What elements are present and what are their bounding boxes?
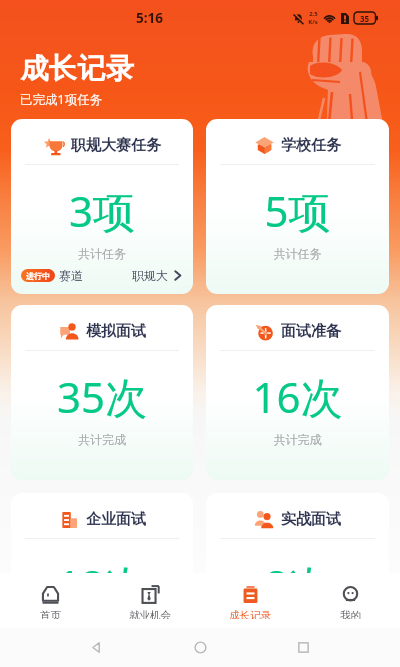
staticText: 共计任务 [206,246,389,261]
staticText: 8次 [206,556,389,613]
staticText: 首页 [40,609,61,619]
staticText: 共计完成 [11,432,193,447]
button[interactable]: 职规大赛任务 [11,119,193,294]
staticText: 已完成1项任务 [20,91,103,108]
staticText: 模拟面试 [86,322,146,341]
staticText: 学校任务 [281,136,341,155]
staticText: 进行中 [26,271,50,281]
other: Recents [296,640,311,655]
staticText: 共计完成 [206,432,389,447]
button[interactable]: 成长记录 [200,573,300,628]
staticText: 我的 [340,609,361,619]
staticText: K/s [308,18,318,26]
staticText: 成长记录 [229,609,271,619]
button[interactable]: 企业面试 [11,493,193,667]
button[interactable]: 首页 [0,573,100,628]
staticText: 成长记录 [20,51,134,86]
staticText: 企业面试 [86,510,146,529]
staticText: 共计任务 [11,246,193,261]
staticText: 职规大 [132,268,168,283]
staticText: 就业机会 [129,609,171,619]
button[interactable]: 面试准备 [206,305,389,480]
staticText: 5项 [206,182,389,239]
staticText: 3项 [11,182,193,239]
button[interactable]: 学校任务 [206,119,389,294]
staticText: 5:16 [136,9,163,27]
button[interactable]: 模拟面试 [11,305,193,480]
staticText: 35次 [11,368,193,425]
button[interactable]: 实战面试 [206,493,389,667]
button[interactable]: 就业机会 [100,573,200,628]
staticText: 面试准备 [281,322,341,341]
staticText: 实战面试 [281,510,341,529]
staticText: 35 [354,13,375,24]
staticText: 职规大赛任务 [71,136,161,155]
staticText: 12次 [11,556,193,613]
staticText: 2.5 [309,10,318,18]
other: Home [193,640,208,655]
button[interactable]: 我的 [300,573,400,628]
other: Back [89,640,104,655]
staticText: 赛道 [59,268,83,283]
staticText: 16次 [206,368,389,425]
